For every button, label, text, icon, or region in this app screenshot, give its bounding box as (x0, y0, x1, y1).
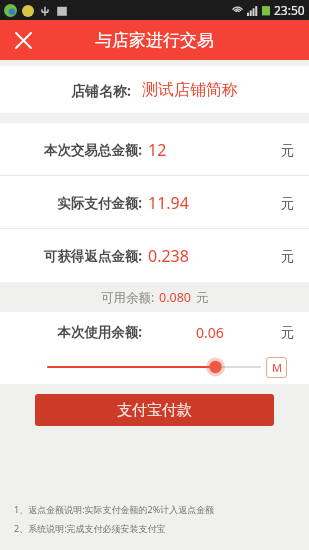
staticText: 元 (281, 142, 295, 159)
staticText: 0.238 (148, 245, 189, 267)
staticText: M (272, 360, 282, 375)
staticText: 支付宝付款 (117, 401, 192, 420)
staticText: 0.080 (159, 289, 191, 306)
staticText: 元 (281, 324, 295, 341)
staticText: 0.06 (196, 323, 224, 342)
button[interactable]: Balance amount slider (48, 354, 260, 380)
staticText: 12 (148, 139, 167, 161)
button[interactable]: 支付宝付款 (35, 394, 274, 426)
staticText: 实际支付金额: (20, 194, 142, 212)
staticText: 1、返点金额说明:实际支付金额的2%计入返点金额 (14, 503, 215, 515)
staticText: 本次交易总金额: (20, 141, 142, 159)
staticText: 本次使用余额: (20, 323, 142, 341)
staticText: 元 (281, 195, 295, 212)
staticText: 测试店铺简称 (142, 80, 238, 100)
staticText: 可用余额: (101, 289, 155, 306)
staticText: 元 (196, 290, 209, 306)
staticText: 店铺名称: (71, 81, 131, 100)
staticText: 元 (281, 248, 295, 265)
staticText: 11.94 (148, 192, 189, 214)
staticText: 23:50 (274, 2, 305, 18)
staticText: 与店家进行交易 (95, 30, 214, 51)
button[interactable]: Close (9, 26, 37, 54)
staticText: 可获得返点金额: (20, 247, 142, 265)
staticText: 2、系统说明:完成支付必须安装支付宝 (14, 522, 166, 534)
button[interactable]: M (266, 357, 287, 378)
